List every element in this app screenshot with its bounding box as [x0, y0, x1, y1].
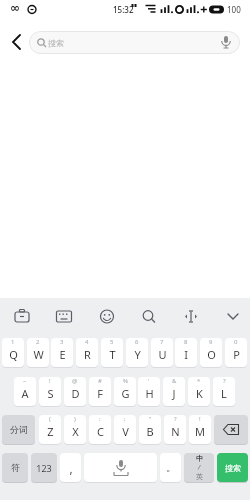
button[interactable]: # [89, 377, 111, 406]
button[interactable]: * [188, 377, 210, 406]
staticText: V [122, 424, 129, 439]
staticText: G [121, 386, 130, 401]
button[interactable] [214, 415, 248, 444]
button[interactable]: 3 [51, 338, 73, 367]
staticText: Z [47, 424, 54, 439]
staticText: 分词 [10, 424, 28, 435]
staticText: P [233, 347, 240, 362]
staticText: 4 [85, 338, 89, 346]
staticText: , [69, 460, 73, 476]
staticText: F [97, 386, 103, 401]
staticText: 5 [110, 338, 114, 346]
staticText: @ [72, 377, 78, 385]
staticText: ∞ [10, 1, 20, 15]
staticText: Y [134, 347, 141, 362]
button[interactable]: " [139, 415, 161, 444]
button[interactable]: 搜索 [217, 453, 248, 482]
staticText: ; [124, 415, 126, 423]
staticText: 9 [209, 338, 213, 346]
button[interactable]: ) [64, 415, 86, 444]
staticText: N [171, 424, 180, 439]
staticText: R [84, 347, 91, 362]
staticText: 123 [36, 462, 52, 474]
staticText: ) [74, 415, 76, 423]
staticText: ' [148, 377, 150, 385]
button[interactable] [177, 301, 205, 331]
button[interactable]: 8 [175, 338, 197, 367]
staticText: M [195, 424, 205, 439]
staticText: W [33, 347, 44, 362]
staticText: K [196, 386, 203, 401]
staticText: 符 [11, 462, 20, 473]
button[interactable]: 5 [101, 338, 123, 367]
staticText: 15:32 [113, 4, 134, 15]
staticText: D [71, 386, 80, 401]
staticText: 0 [234, 338, 238, 346]
staticText: & [172, 377, 177, 385]
button[interactable]: ( [39, 415, 61, 444]
staticText: 1 [11, 338, 15, 346]
button[interactable]: ; [114, 415, 136, 444]
staticText: ? [174, 415, 177, 423]
button[interactable]: ! [39, 377, 61, 406]
button[interactable]: 7 [151, 338, 173, 367]
staticText: ? [223, 377, 226, 385]
button[interactable]: ? [164, 415, 186, 444]
staticText: 搜索 [48, 38, 64, 48]
button[interactable]: 6 [126, 338, 148, 367]
staticText: 7 [160, 338, 164, 346]
button[interactable] [8, 301, 36, 331]
button[interactable]: : [89, 415, 111, 444]
staticText: 。 [166, 461, 176, 474]
staticText: 中 [196, 454, 203, 463]
button[interactable]: ! [189, 415, 211, 444]
staticText: S [47, 386, 54, 401]
button[interactable]: 中 [184, 453, 214, 482]
button[interactable]: 搜索 [29, 31, 240, 54]
staticText: 8 [184, 338, 188, 346]
staticText: ~ [23, 377, 27, 385]
button[interactable]: 0 [225, 338, 247, 367]
staticText: ! [199, 415, 201, 423]
staticText: L [221, 386, 227, 401]
staticText: E [59, 347, 66, 362]
button[interactable]: 4 [76, 338, 98, 367]
staticText: ( [49, 415, 51, 423]
button[interactable]: 1 [2, 338, 24, 367]
staticText: 6 [135, 338, 139, 346]
button[interactable]: , [60, 453, 81, 482]
button[interactable]: & [163, 377, 185, 406]
button[interactable]: ? [213, 377, 235, 406]
button[interactable]: ' [138, 377, 160, 406]
button[interactable] [93, 301, 121, 331]
button[interactable] [219, 301, 247, 331]
staticText: 搜索 [225, 463, 241, 473]
staticText: Q [9, 347, 18, 362]
staticText: O [207, 347, 216, 362]
staticText: I [184, 347, 188, 362]
staticText: C [97, 424, 104, 439]
button[interactable]: 2 [27, 338, 49, 367]
button[interactable]: 123 [31, 453, 57, 482]
staticText: J [172, 386, 176, 401]
staticText: 2 [36, 338, 40, 346]
staticText: U [158, 347, 167, 362]
button[interactable]: 分词 [2, 415, 35, 444]
staticText: ! [49, 377, 51, 385]
button[interactable]: 符 [2, 453, 28, 482]
staticText: 英 [196, 472, 203, 481]
button[interactable]: ~ [14, 377, 36, 406]
button[interactable] [84, 453, 157, 482]
staticText: 3 [60, 338, 64, 346]
staticText: % [123, 377, 128, 385]
button[interactable]: 9 [200, 338, 222, 367]
button[interactable] [50, 301, 78, 331]
button[interactable]: @ [64, 377, 86, 406]
button[interactable]: 。 [160, 453, 181, 482]
button[interactable]: % [114, 377, 136, 406]
staticText: T [109, 347, 116, 362]
staticText: " [149, 415, 152, 423]
button[interactable] [135, 301, 163, 331]
staticText: 100 [227, 4, 241, 15]
button[interactable] [4, 30, 28, 54]
